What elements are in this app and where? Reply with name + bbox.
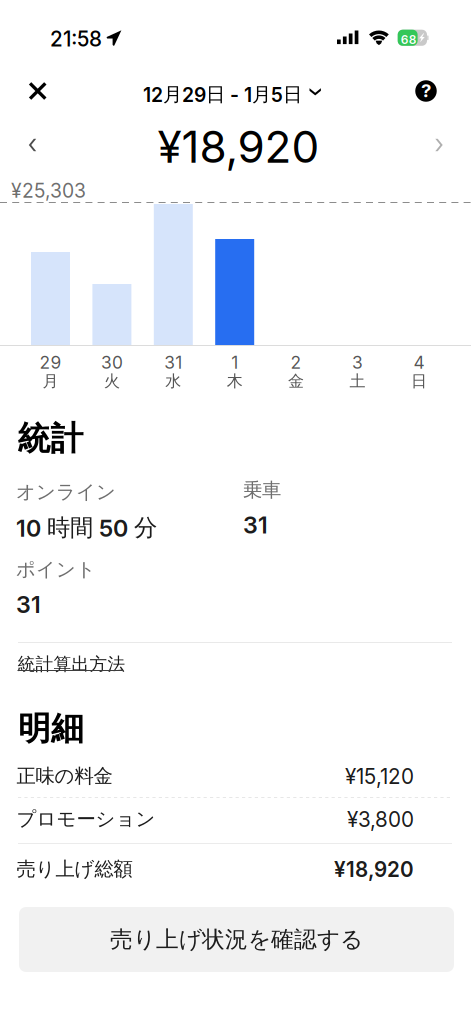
staticText: 月 (42, 371, 58, 391)
staticText: ? (421, 79, 431, 102)
button[interactable]: Close (14, 67, 62, 115)
staticText: ¥3,800 (347, 807, 414, 832)
staticText: 売り上げ状況を確認する (110, 925, 363, 954)
button[interactable]: 売り上げ状況を確認する (19, 907, 454, 972)
staticText: 3 (352, 352, 363, 373)
staticText: 日 (411, 371, 427, 391)
staticText: 10 時間 50 分 (16, 513, 157, 542)
button[interactable]: Previous week (11, 124, 53, 166)
button[interactable]: Next week (418, 124, 460, 166)
staticText: プロモーション (16, 807, 155, 831)
staticText: 31 (164, 352, 182, 373)
staticText: ¥18,920 (334, 857, 414, 882)
staticText: 木 (227, 371, 243, 391)
staticText: 明細 (18, 708, 84, 749)
staticText: 乗車 (243, 478, 281, 502)
staticText: ¥18,920 (157, 120, 319, 173)
button[interactable]: Help (404, 69, 448, 113)
staticText: ¥15,120 (345, 764, 414, 789)
staticText: 1 (231, 352, 238, 373)
staticText: 金 (288, 371, 304, 391)
staticText: 30 (101, 352, 123, 373)
staticText: 21:58 (50, 26, 102, 51)
staticText: 31 (243, 511, 268, 539)
staticText: 土 (349, 371, 365, 391)
staticText: 統計算出方法 (17, 653, 125, 675)
staticText: 2 (291, 352, 302, 373)
staticText: ¥25,303 (11, 179, 86, 202)
staticText: 統計 (17, 418, 83, 459)
staticText: 68 (401, 32, 417, 47)
staticText: 12月29日 - 1月5日 (143, 82, 302, 107)
staticText: 売り上げ総額 (16, 857, 132, 881)
staticText: 4 (413, 352, 424, 373)
staticText: ポイント (16, 557, 96, 582)
staticText: 31 (16, 590, 41, 619)
staticText: 正味の料金 (16, 764, 112, 788)
staticText: 火 (104, 371, 120, 391)
button[interactable]: 12月29日 - 1月5日 (143, 70, 327, 114)
staticText: オンライン (16, 480, 116, 504)
staticText: 29 (39, 352, 61, 373)
staticText: 水 (165, 371, 181, 391)
button[interactable]: 統計算出方法 (17, 648, 137, 680)
